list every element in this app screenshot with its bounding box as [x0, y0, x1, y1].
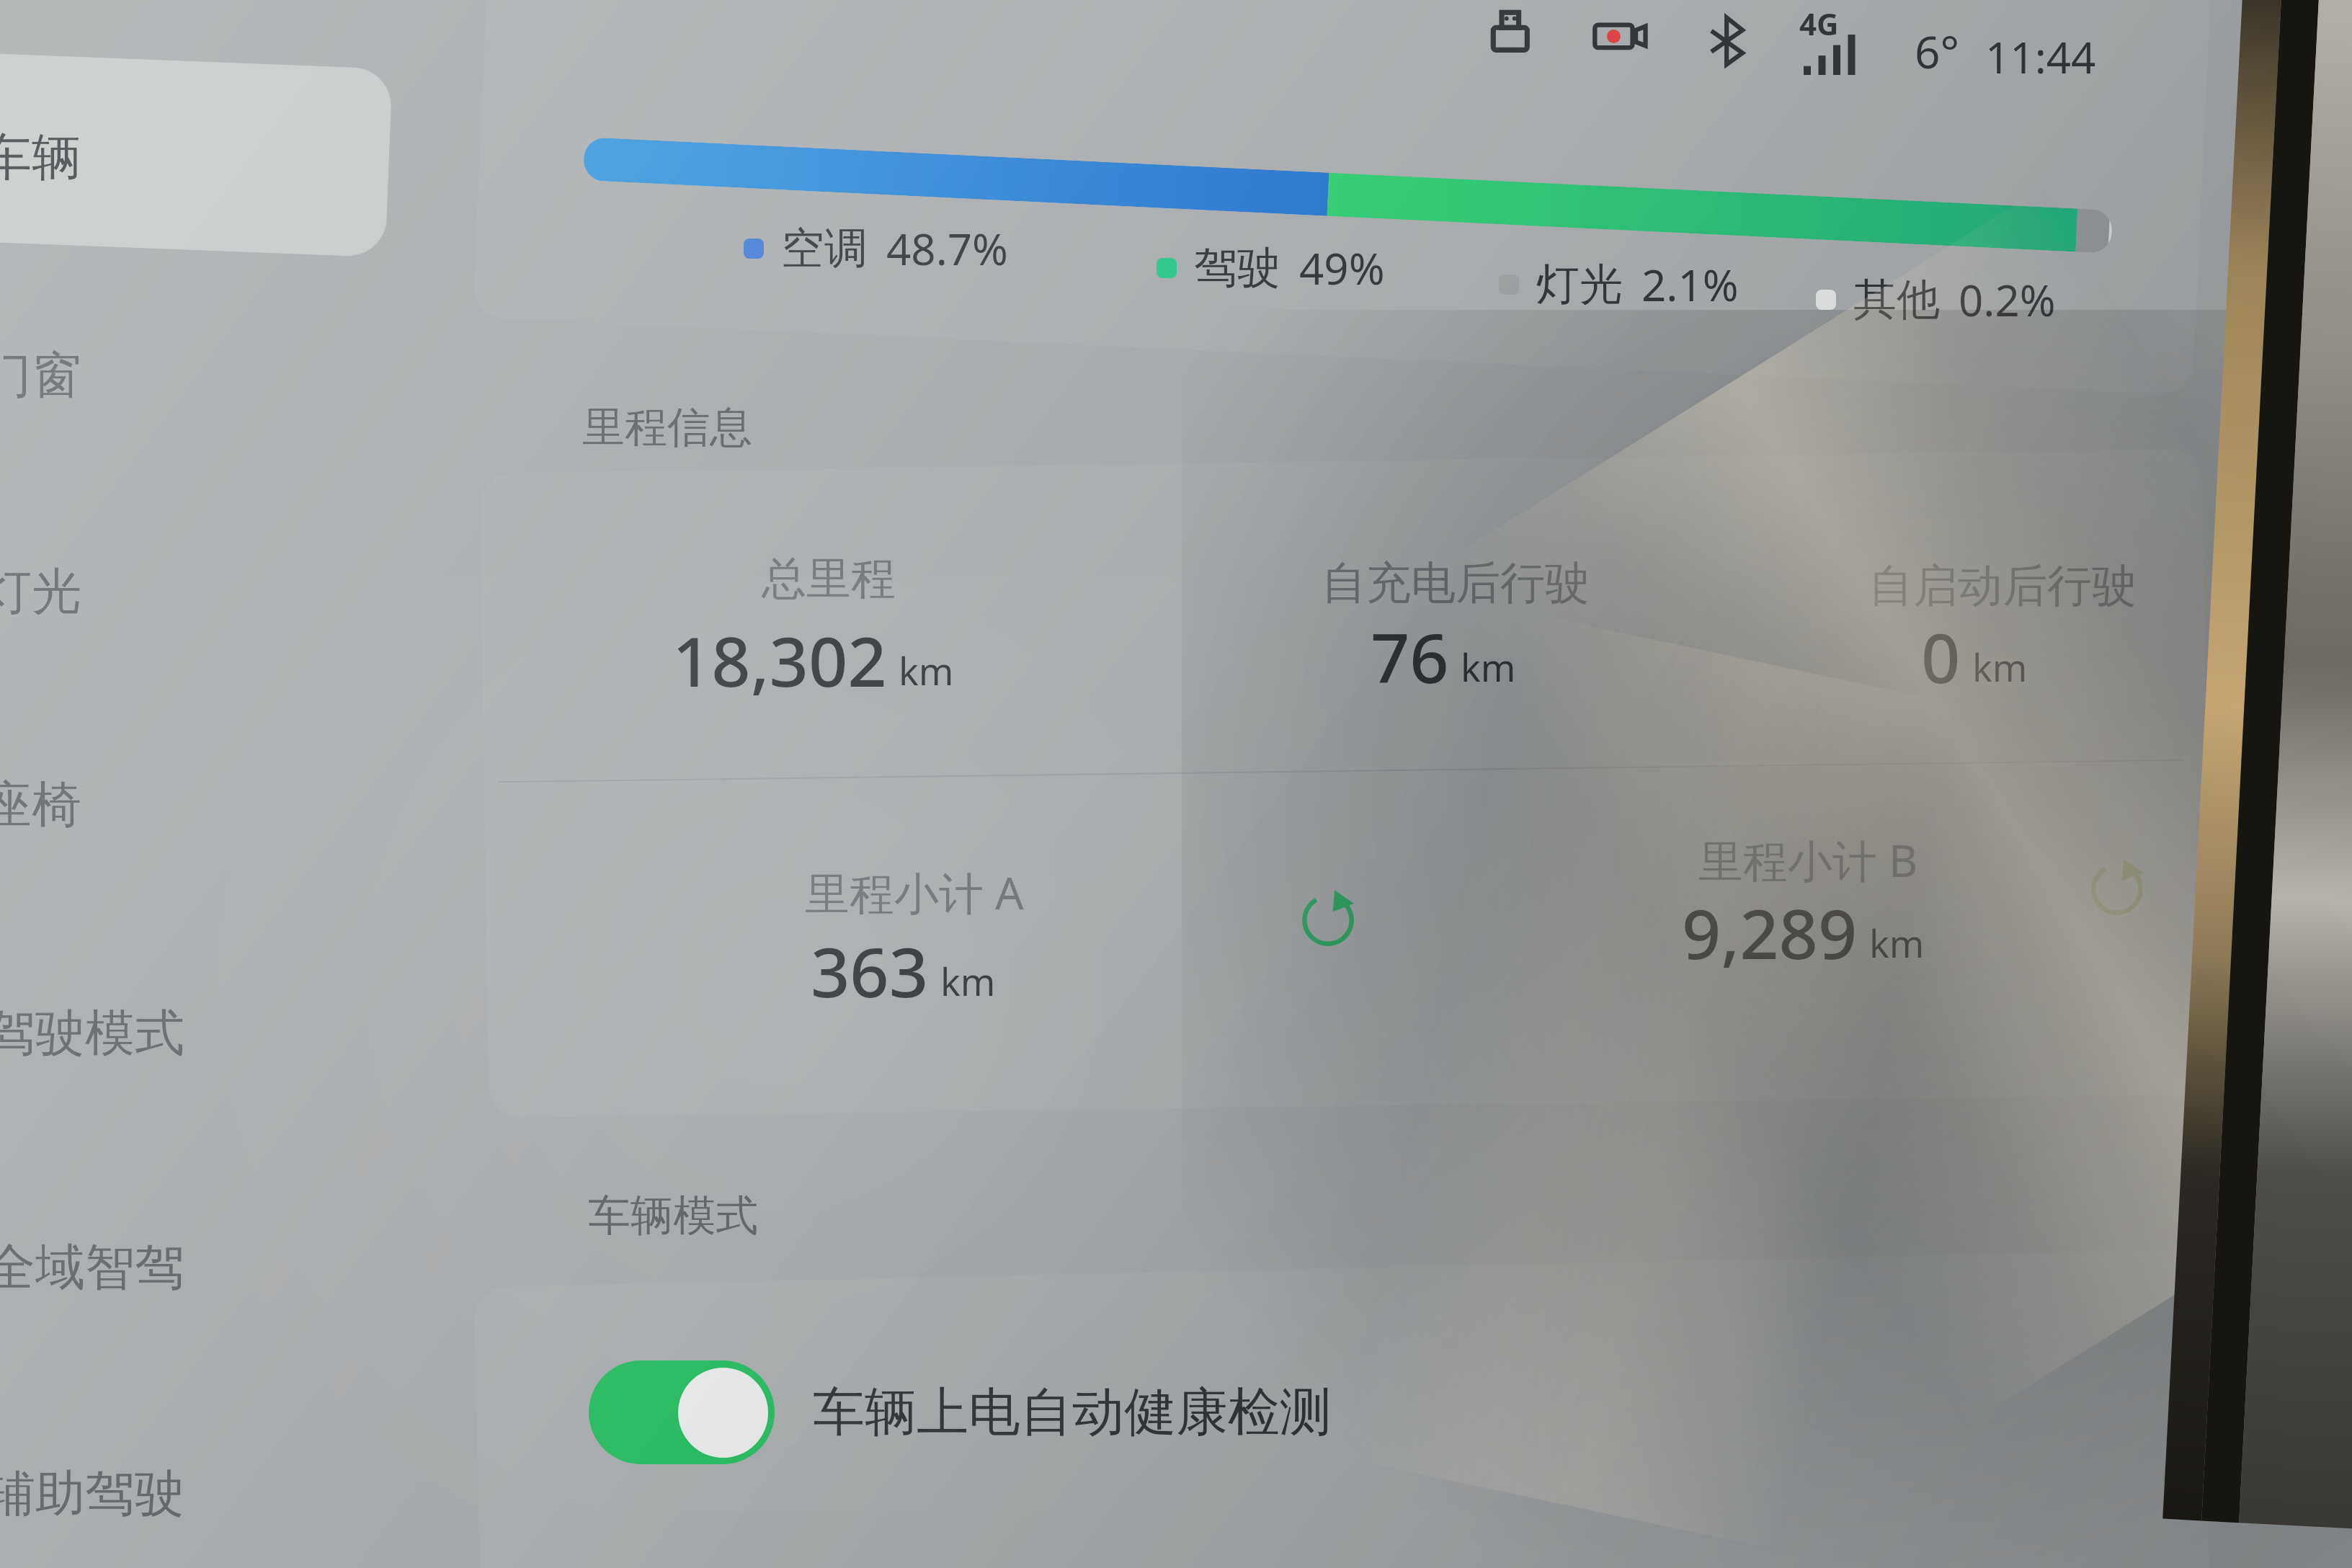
button[interactable]: Reset trip meter [1278, 870, 1378, 971]
button[interactable]: 全域智驾 [0, 1234, 418, 1302]
staticText: 363 [811, 924, 929, 1017]
staticText: km [1461, 641, 1516, 692]
staticText: 2.1% [1641, 255, 1739, 314]
staticText: 48.7% [886, 219, 1008, 278]
button[interactable]: 里程小计 A [805, 862, 1024, 923]
staticText: km [940, 955, 996, 1007]
staticText: km [1869, 917, 1925, 968]
button[interactable]: 车辆上电自动健康检测 [589, 1355, 1353, 1470]
button[interactable]: 灯光 [1499, 252, 1739, 317]
staticText: 6° [1915, 21, 1960, 81]
staticText: 门窗 [0, 344, 81, 407]
staticText: 76 [1371, 610, 1449, 703]
staticText: 车辆上电自动健康检测 [813, 1380, 1332, 1445]
staticText: 座椅 [0, 774, 81, 837]
button[interactable]: Reset trip meter [2067, 839, 2168, 940]
button[interactable]: 自启动后行驶 [1868, 558, 2137, 614]
button[interactable]: 里程小计 B [1698, 829, 1918, 891]
button[interactable]: 空调 [744, 216, 1008, 281]
button[interactable]: 车辆 [0, 124, 414, 192]
staticText: 9,289 [1682, 886, 1858, 979]
button[interactable]: 其他 [1816, 267, 2056, 332]
button[interactable]: 座椅 [0, 771, 414, 839]
staticText: 灯光 [1536, 257, 1623, 312]
button[interactable]: 门窗 [0, 342, 414, 410]
staticText: 4G [1799, 3, 1839, 44]
staticText: 车辆模式 [588, 1189, 758, 1242]
staticText: 辅助驾驶 [0, 1463, 184, 1525]
button[interactable]: USB [1470, 0, 1556, 76]
button[interactable] [0, 47, 393, 257]
staticText: 11:44 [1985, 27, 2096, 86]
staticText: 其他 [1853, 272, 1940, 327]
button[interactable]: Bluetooth [1684, 0, 1770, 84]
staticText: 49% [1299, 239, 1385, 298]
staticText: km [1972, 641, 2028, 692]
button[interactable]: Recording [1580, 0, 1666, 79]
staticText: 18,302 [672, 613, 887, 706]
staticText: 驾驶 [1194, 241, 1280, 295]
staticText: 灯光 [0, 561, 81, 623]
button[interactable]: 灯光 [0, 558, 414, 626]
staticText: 全域智驾 [0, 1237, 184, 1299]
button[interactable]: 总里程 [762, 551, 896, 607]
staticText: 里程信息 [582, 401, 752, 454]
button[interactable]: 自充电后行驶 [1322, 555, 1590, 611]
staticText: 空调 [781, 221, 868, 276]
button[interactable]: 驾驶 [1157, 236, 1385, 300]
staticText: 车辆 [0, 127, 81, 190]
staticText: 驾驶模式 [0, 1002, 184, 1065]
staticText: 0 [1921, 610, 1961, 703]
button[interactable]: 驾驶模式 [0, 999, 418, 1068]
staticText: km [899, 645, 954, 696]
staticText: 0.2% [1959, 270, 2056, 329]
button[interactable]: 辅助驾驶 [0, 1460, 418, 1528]
button[interactable]: Signal 4G [1791, 1, 1877, 88]
